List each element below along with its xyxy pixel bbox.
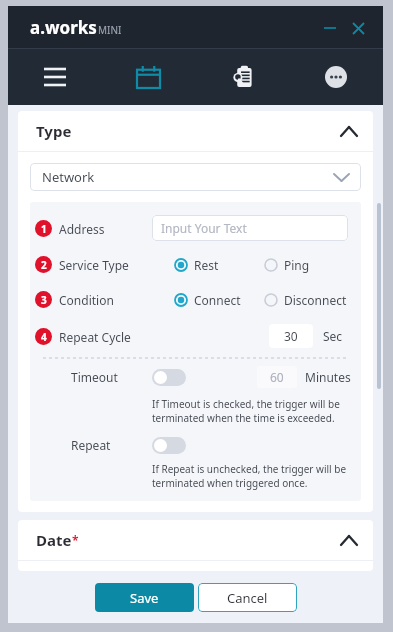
staticText: Address bbox=[59, 221, 105, 237]
button[interactable]: Type bbox=[18, 111, 373, 151]
button[interactable]: Rest bbox=[174, 257, 264, 273]
staticText: 60 bbox=[270, 369, 284, 385]
button[interactable]: Calendar bbox=[128, 57, 168, 97]
button[interactable]: Menu bbox=[35, 57, 75, 97]
button[interactable]: 30 bbox=[269, 324, 313, 348]
staticText: Repeat bbox=[71, 437, 152, 453]
staticText: Service Type bbox=[59, 257, 129, 273]
staticText: a.works bbox=[30, 16, 97, 39]
button[interactable]: Save bbox=[95, 583, 194, 612]
staticText: Disconnect bbox=[284, 292, 347, 308]
staticText: Connect bbox=[194, 292, 241, 308]
button[interactable]: Input Your Text bbox=[152, 215, 348, 241]
button[interactable]: Ping bbox=[264, 257, 344, 273]
button[interactable]: Cancel bbox=[198, 583, 297, 612]
button[interactable]: Reports bbox=[222, 57, 262, 97]
staticText: If Timeout is checked, the trigger will … bbox=[152, 397, 340, 425]
staticText: Network bbox=[42, 168, 95, 186]
button[interactable]: Close bbox=[347, 17, 369, 39]
staticText: Date bbox=[36, 530, 72, 550]
button[interactable]: Network bbox=[30, 163, 361, 191]
staticText: MINI bbox=[98, 23, 122, 37]
staticText: * bbox=[72, 532, 79, 548]
staticText: Minutes bbox=[305, 369, 353, 385]
staticText: Type bbox=[36, 121, 72, 141]
button[interactable]: Minimize bbox=[319, 17, 341, 39]
staticText: Cancel bbox=[227, 589, 268, 607]
button[interactable]: Toggle bbox=[152, 437, 186, 454]
staticText: Sec bbox=[323, 328, 353, 344]
staticText: 3 bbox=[41, 293, 47, 307]
staticText: Repeat Cycle bbox=[59, 329, 131, 345]
staticText: If Repeat is unchecked, the trigger will… bbox=[152, 462, 347, 490]
staticText: Condition bbox=[59, 292, 114, 308]
staticText: Save bbox=[130, 589, 159, 607]
button[interactable]: Date bbox=[18, 520, 373, 560]
button[interactable]: Connect bbox=[174, 292, 264, 308]
button[interactable]: Disconnect bbox=[264, 292, 361, 308]
staticText: 30 bbox=[284, 328, 298, 344]
staticText: 4 bbox=[41, 330, 47, 344]
staticText: 2 bbox=[41, 258, 47, 272]
button[interactable]: More options bbox=[316, 57, 356, 97]
staticText: Input Your Text bbox=[161, 220, 247, 236]
staticText: Timeout bbox=[71, 369, 152, 385]
staticText: Ping bbox=[284, 257, 310, 273]
staticText: Rest bbox=[194, 257, 219, 273]
button[interactable]: Toggle bbox=[152, 369, 186, 386]
staticText: 1 bbox=[41, 222, 47, 236]
